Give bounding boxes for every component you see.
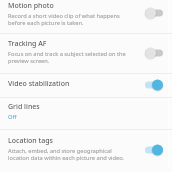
staticText: Attach, embed, and store geographical lo… — [8, 147, 130, 162]
button[interactable] — [0, 34, 172, 73]
staticText: Off — [8, 113, 17, 121]
button[interactable]: Tracking AF toggle — [145, 47, 163, 59]
button[interactable] — [0, 130, 172, 172]
staticText: Focus on and track a subject selected on… — [8, 50, 130, 65]
staticText: Video stabilization — [8, 79, 70, 89]
button[interactable] — [0, 0, 172, 33]
staticText: Tracking AF — [8, 39, 47, 49]
staticText: Location tags — [8, 136, 53, 146]
staticText: Motion photo — [8, 1, 54, 11]
staticText: Grid lines — [8, 102, 40, 112]
staticText: Record a short video clip of what happen… — [8, 12, 130, 27]
button[interactable] — [0, 98, 172, 129]
button[interactable]: Motion photo toggle — [145, 7, 163, 19]
button[interactable]: Video stabilization toggle — [145, 79, 163, 91]
button[interactable] — [0, 74, 172, 97]
button[interactable]: Location tags toggle — [145, 144, 163, 156]
